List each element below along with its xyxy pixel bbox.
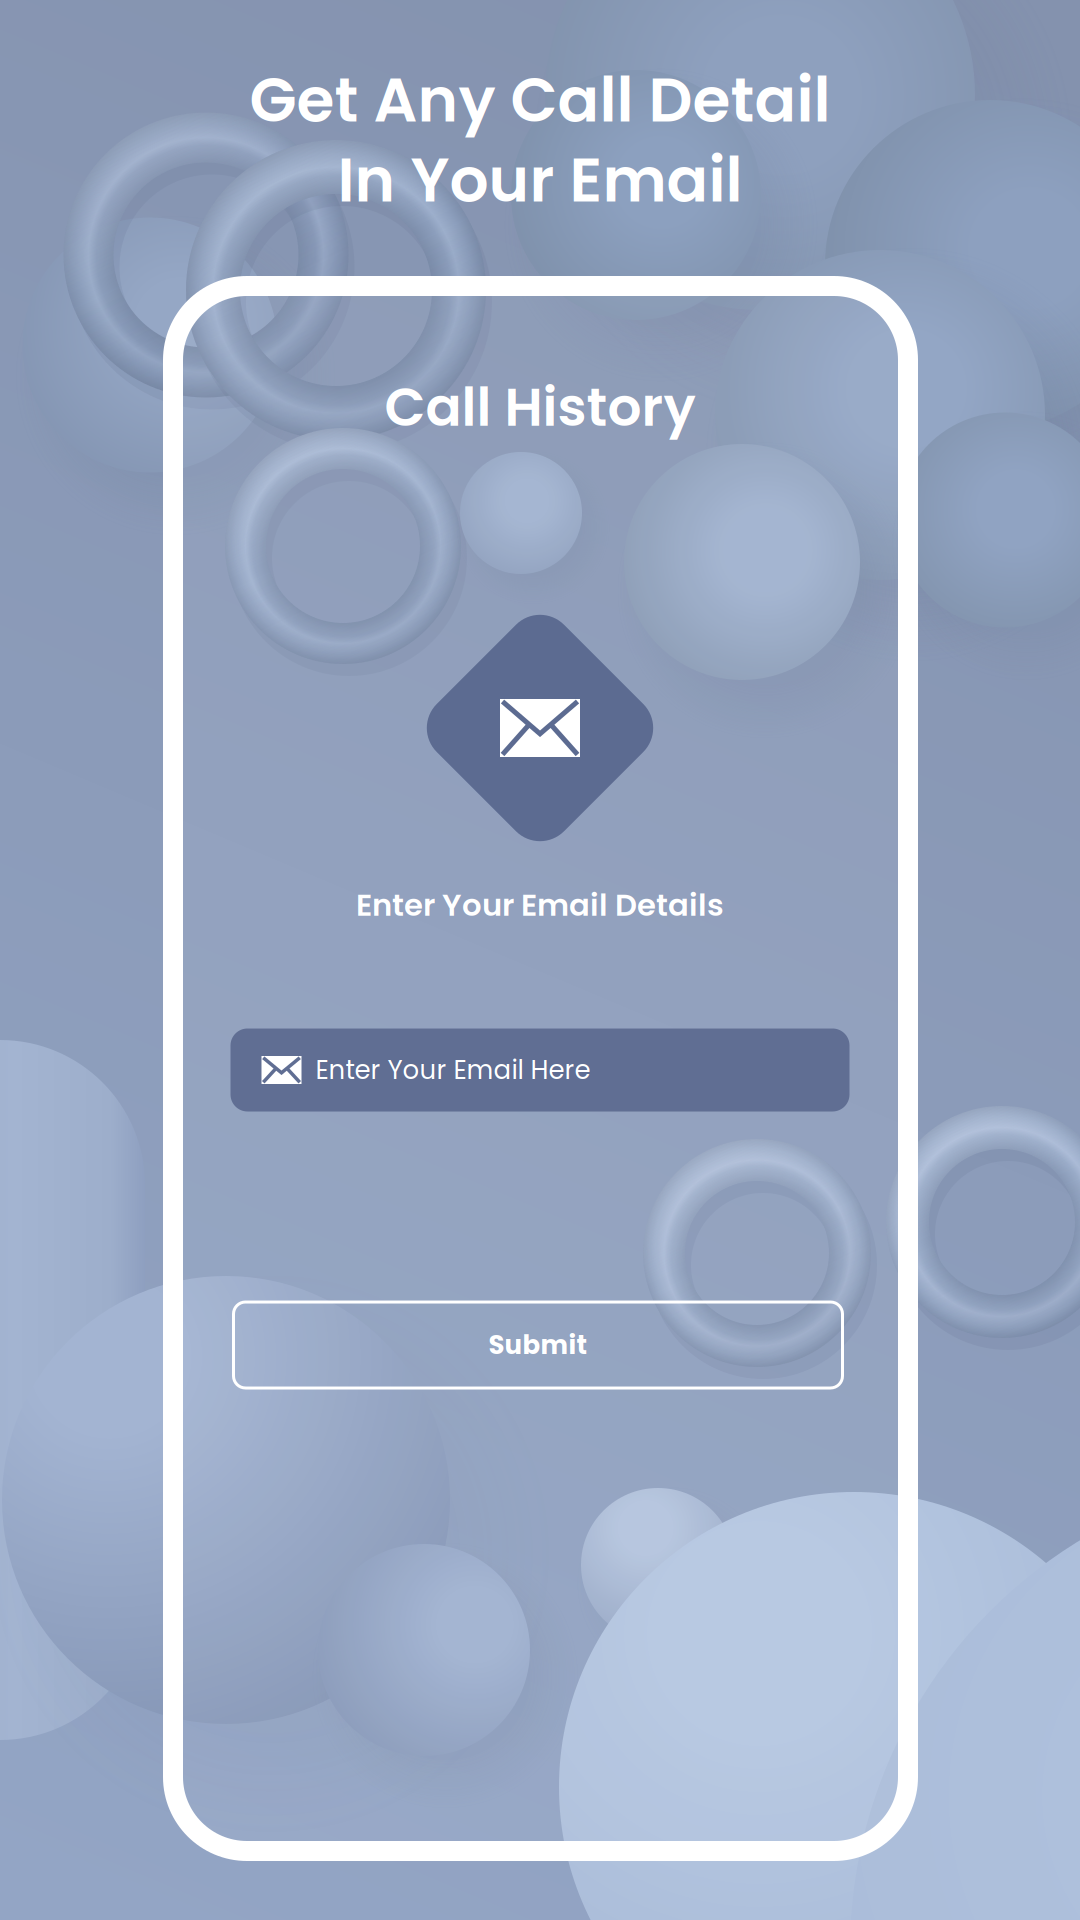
button[interactable]: Submit bbox=[232, 1300, 844, 1389]
staticText: Enter Your Email Here bbox=[315, 1052, 590, 1088]
staticText: Get Any Call Detail bbox=[249, 57, 830, 143]
staticText: In Your Email bbox=[337, 137, 742, 223]
staticText: Enter Your Email Details bbox=[356, 883, 724, 926]
button[interactable]: Enter Your Email Here bbox=[230, 1028, 849, 1111]
staticText: Submit bbox=[488, 1327, 587, 1363]
staticText: Call History bbox=[384, 370, 695, 444]
